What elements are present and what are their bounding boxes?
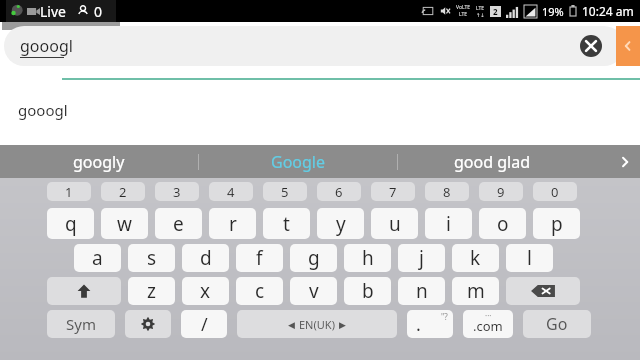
staticText: z	[147, 278, 156, 304]
staticText: c	[255, 278, 265, 304]
button[interactable]: Clear	[580, 35, 602, 57]
button[interactable]: /	[181, 310, 227, 338]
button[interactable]: Live	[6, 0, 116, 22]
button[interactable]: 9	[479, 182, 523, 201]
button[interactable]: Shift	[47, 277, 121, 305]
button[interactable]: 2	[101, 182, 145, 201]
button[interactable]: b	[344, 277, 391, 305]
button[interactable]: i	[425, 208, 472, 239]
staticText: o	[497, 211, 509, 237]
button[interactable]: googly	[0, 145, 198, 178]
button[interactable]: 7	[371, 182, 415, 201]
button[interactable]: z	[128, 277, 175, 305]
staticText: gooogl	[18, 100, 68, 120]
staticText: a	[92, 245, 103, 271]
button[interactable]: g	[290, 244, 337, 272]
button[interactable]: t	[263, 208, 310, 239]
button[interactable]: 6	[317, 182, 361, 201]
button[interactable]: good glad	[398, 145, 610, 178]
staticText: VoLTE	[456, 4, 471, 11]
staticText: Sym	[66, 314, 96, 334]
staticText: 3	[173, 183, 181, 201]
staticText: Live	[40, 2, 66, 21]
button[interactable]: More suggestions	[610, 145, 640, 178]
button[interactable]: Expand panel	[616, 26, 640, 66]
button[interactable]: p	[533, 208, 580, 239]
staticText: ···	[485, 310, 492, 321]
staticText: w	[117, 211, 132, 237]
button[interactable]: v	[290, 277, 337, 305]
button[interactable]: c	[236, 277, 283, 305]
staticText: 2	[119, 183, 127, 201]
staticText: i	[446, 211, 451, 237]
staticText: g	[308, 245, 320, 271]
button[interactable]: o	[479, 208, 526, 239]
staticText: ↑↓	[476, 12, 485, 18]
staticText: good glad	[454, 151, 530, 173]
staticText: ▶	[339, 320, 346, 330]
button[interactable]: 3	[155, 182, 199, 201]
staticText: m	[467, 278, 485, 304]
staticText: Google	[271, 151, 326, 173]
staticText: 2	[493, 6, 498, 17]
staticText: v	[309, 278, 319, 304]
staticText: "?	[441, 311, 448, 322]
staticText: 8	[443, 183, 451, 201]
button[interactable]: Sym	[47, 310, 115, 338]
button[interactable]: Space	[237, 310, 397, 338]
staticText: x	[200, 278, 211, 304]
button[interactable]: 0	[533, 182, 577, 201]
button[interactable]: k	[452, 244, 499, 272]
button[interactable]: n	[398, 277, 445, 305]
staticText: .	[416, 312, 421, 337]
staticText: n	[416, 278, 428, 304]
button[interactable]: r	[209, 208, 256, 239]
staticText: .com	[473, 317, 503, 335]
button[interactable]: l	[506, 244, 553, 272]
button[interactable]: Period	[407, 310, 453, 338]
staticText: b	[362, 278, 374, 304]
staticText: 6	[335, 183, 343, 201]
staticText: /	[201, 312, 208, 337]
button[interactable]: 4	[209, 182, 253, 201]
staticText: f	[256, 245, 263, 271]
staticText: LTE	[459, 11, 468, 18]
button[interactable]: j	[398, 244, 445, 272]
staticText: l	[527, 245, 532, 271]
button[interactable]: 8	[425, 182, 469, 201]
button[interactable]: gooogl	[4, 26, 624, 66]
staticText: k	[470, 245, 481, 271]
button[interactable]: s	[128, 244, 175, 272]
button[interactable]: Google	[199, 145, 397, 178]
staticText: d	[200, 245, 212, 271]
button[interactable]: d	[182, 244, 229, 272]
button[interactable]: e	[155, 208, 202, 239]
staticText: 0	[94, 2, 103, 21]
staticText: 10:24 am	[582, 3, 634, 19]
staticText: Go	[546, 313, 568, 335]
staticText: ◀	[288, 320, 295, 330]
button[interactable]: dot com	[463, 310, 513, 338]
button[interactable]: Backspace	[506, 277, 580, 305]
staticText: LTE	[476, 5, 485, 12]
staticText: gooogl	[20, 35, 73, 57]
button[interactable]: m	[452, 277, 499, 305]
button[interactable]: gooogl	[0, 90, 640, 130]
button[interactable]: y	[317, 208, 364, 239]
button[interactable]: f	[236, 244, 283, 272]
button[interactable]: u	[371, 208, 418, 239]
staticText: EN(UK)	[299, 317, 335, 332]
button[interactable]: w	[101, 208, 148, 239]
button[interactable]: 5	[263, 182, 307, 201]
button[interactable]: Settings	[125, 310, 171, 338]
button[interactable]: q	[47, 208, 94, 239]
staticText: 7	[389, 183, 397, 201]
staticText: p	[551, 211, 563, 237]
button[interactable]: x	[182, 277, 229, 305]
button[interactable]: a	[74, 244, 121, 272]
button[interactable]: 1	[47, 182, 91, 201]
button[interactable]: Go	[523, 310, 591, 338]
staticText: e	[173, 211, 184, 237]
button[interactable]: h	[344, 244, 391, 272]
staticText: 5	[281, 183, 289, 201]
